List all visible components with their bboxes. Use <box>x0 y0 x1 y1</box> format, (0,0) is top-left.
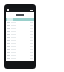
button[interactable] <box>6 57 34 60</box>
button[interactable] <box>6 51 34 54</box>
button[interactable] <box>6 54 34 57</box>
button[interactable] <box>6 36 34 39</box>
button[interactable] <box>6 48 34 51</box>
button[interactable] <box>6 45 34 48</box>
button[interactable] <box>6 39 34 42</box>
button[interactable] <box>6 33 34 36</box>
button[interactable] <box>6 21 34 24</box>
button[interactable] <box>6 27 34 30</box>
button[interactable] <box>6 42 34 45</box>
button[interactable] <box>6 24 34 27</box>
button[interactable] <box>6 30 34 33</box>
